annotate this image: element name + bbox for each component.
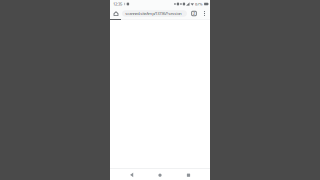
button[interactable]: Tabs xyxy=(189,8,199,19)
staticText: 12:35 xyxy=(113,1,122,7)
button[interactable]: More options xyxy=(199,8,210,19)
button[interactable]: Recent apps xyxy=(181,169,195,180)
button[interactable]: scanned.site/tmp/13736/?session xyxy=(122,10,187,17)
staticText: scanned.site/tmp/13736/?session xyxy=(125,11,181,16)
button[interactable]: Home xyxy=(110,8,122,19)
staticText: 87% xyxy=(195,1,203,7)
button[interactable]: Back xyxy=(124,169,138,180)
button[interactable]: Home xyxy=(153,169,167,180)
staticText: 2 xyxy=(193,11,195,16)
